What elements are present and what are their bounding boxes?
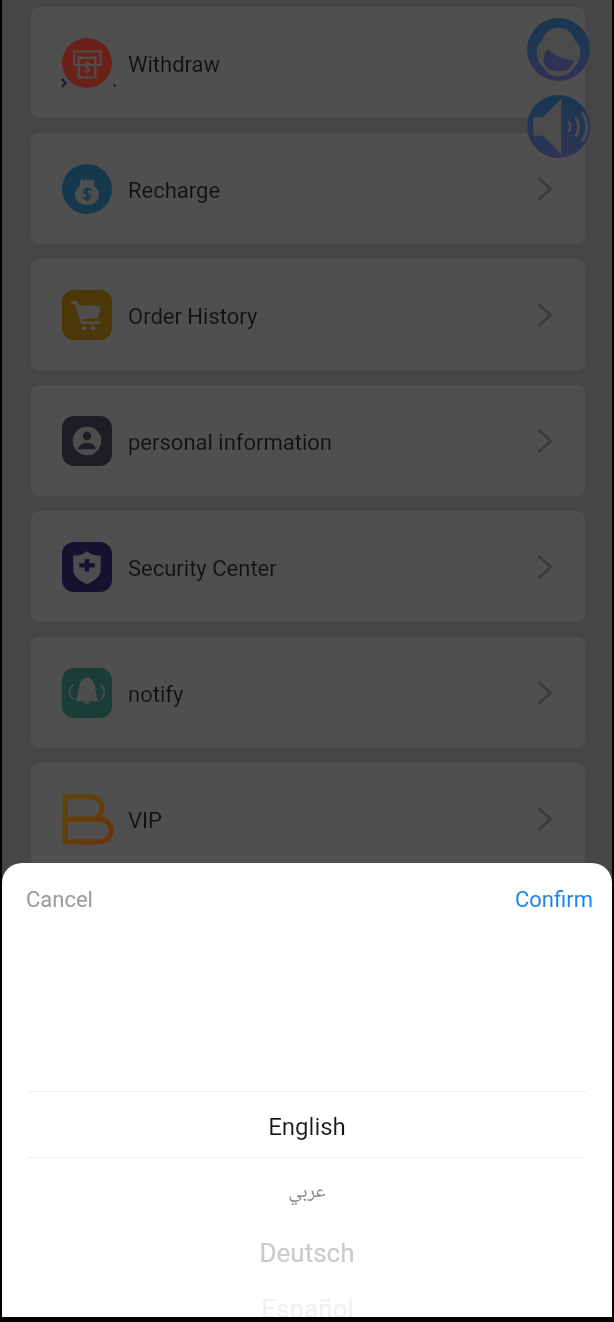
button[interactable]: Customer service — [527, 18, 590, 81]
button[interactable]: Security Center — [31, 511, 585, 622]
staticText: Español — [261, 1294, 354, 1317]
staticText: Recharge — [128, 178, 221, 204]
button[interactable]: Cancel — [2, 871, 117, 925]
staticText: Security Center — [128, 556, 277, 582]
staticText: عربي — [288, 1179, 326, 1206]
staticText: Deutsch — [259, 1238, 355, 1268]
button[interactable]: VIP — [31, 763, 585, 874]
staticText: notify — [128, 682, 184, 708]
button[interactable]: Deutsch — [2, 1220, 612, 1281]
button[interactable]: Sound — [527, 95, 590, 158]
button[interactable]: عربي — [2, 1158, 612, 1220]
staticText: Withdraw — [128, 52, 221, 78]
button[interactable]: Withdraw — [31, 7, 585, 118]
staticText: English — [268, 1113, 346, 1141]
button[interactable]: notify — [31, 637, 585, 748]
staticText: Cancel — [26, 887, 93, 913]
button[interactable]: English — [2, 1092, 612, 1157]
button[interactable]: Confirm — [491, 871, 612, 925]
staticText: Order History — [128, 304, 258, 330]
staticText: Confirm — [515, 887, 593, 913]
button[interactable]: personal information — [31, 385, 585, 496]
button[interactable]: Order History — [31, 259, 585, 370]
button[interactable]: Recharge — [31, 133, 585, 244]
staticText: VIP — [128, 808, 162, 834]
staticText: personal information — [128, 430, 332, 456]
